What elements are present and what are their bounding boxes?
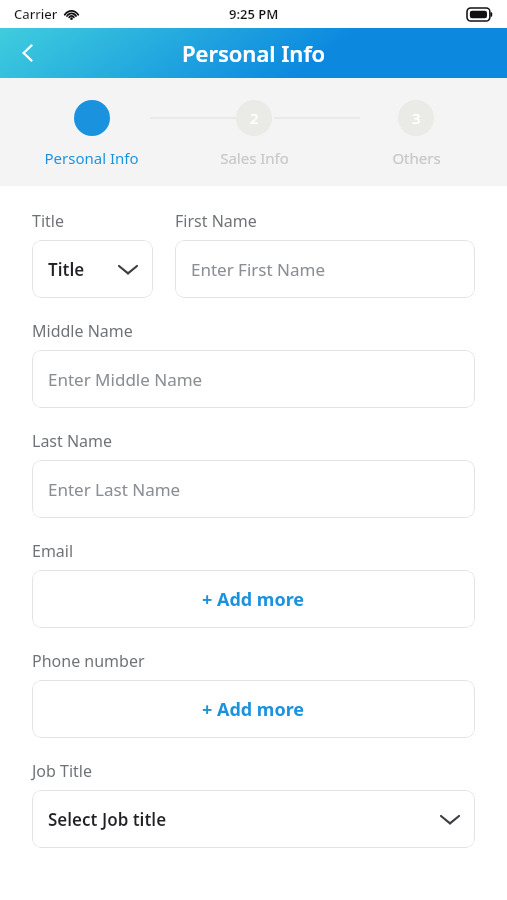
button[interactable]: Personal Info (10, 78, 173, 168)
staticText: + Add more (202, 587, 305, 612)
button[interactable]: + Add more (32, 570, 475, 628)
staticText: Title (32, 210, 64, 232)
button[interactable]: Enter Middle Name (32, 350, 475, 408)
staticText: Personal Info (44, 148, 139, 168)
button[interactable]: Enter Last Name (32, 460, 475, 518)
button[interactable]: Enter First Name (175, 240, 475, 298)
staticText: Last Name (32, 430, 113, 452)
button[interactable]: + Add more (32, 680, 475, 738)
staticText: 9:25 PM (229, 5, 279, 23)
button[interactable]: 2 (173, 78, 335, 168)
button[interactable]: 3 (335, 78, 497, 168)
staticText: Job Title (32, 760, 93, 782)
staticText: Select Job title (48, 808, 167, 831)
staticText: Title (48, 258, 85, 281)
staticText: Carrier (14, 5, 58, 23)
staticText: Middle Name (32, 320, 133, 342)
staticText: First Name (175, 210, 257, 232)
staticText: Sales Info (220, 148, 289, 168)
staticText: + Add more (202, 697, 305, 722)
staticText: Personal Info (182, 38, 326, 68)
staticText: Enter First Name (191, 258, 325, 281)
button[interactable]: Title (32, 240, 153, 298)
staticText: Enter Last Name (48, 478, 181, 501)
staticText: 2 (250, 108, 259, 128)
staticText: Others (392, 148, 441, 168)
button[interactable]: Back (0, 28, 56, 78)
button[interactable]: Select Job title (32, 790, 475, 848)
staticText: 3 (412, 108, 421, 128)
staticText: Enter Middle Name (48, 368, 203, 391)
staticText: Email (32, 540, 74, 562)
staticText: Phone number (32, 650, 145, 672)
